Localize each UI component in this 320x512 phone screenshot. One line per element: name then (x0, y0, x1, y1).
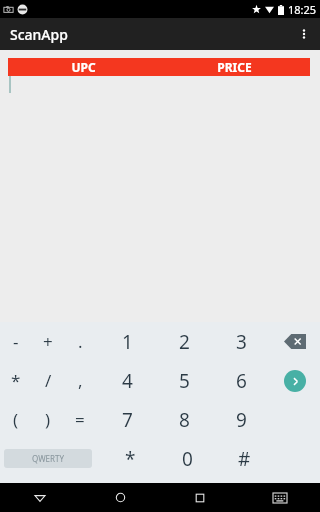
staticText: 2 (179, 329, 190, 355)
button[interactable]: More options (288, 18, 320, 50)
staticText: 18:25 (288, 2, 317, 17)
button[interactable]: Enter (284, 370, 306, 392)
button[interactable]: , (64, 361, 96, 400)
button[interactable]: QWERTY (4, 449, 92, 468)
staticText: 7 (122, 407, 133, 433)
button[interactable]: = (64, 400, 96, 439)
button[interactable]: # (216, 439, 273, 478)
staticText: - (13, 330, 19, 353)
button[interactable]: 7 (99, 400, 156, 439)
button[interactable]: * (102, 439, 159, 478)
staticText: 6 (236, 368, 247, 394)
button[interactable]: Home (80, 483, 160, 512)
button[interactable]: ( (0, 400, 32, 439)
button[interactable]: 8 (156, 400, 213, 439)
button[interactable]: 1 (99, 322, 156, 361)
staticText: ( (13, 408, 19, 431)
staticText: 5 (179, 368, 190, 394)
button[interactable]: 4 (99, 361, 156, 400)
staticText: ScanApp (10, 25, 68, 44)
button[interactable]: Keyboard (240, 483, 320, 512)
button[interactable]: * (0, 361, 32, 400)
button[interactable]: - (0, 322, 32, 361)
staticText: 9 (236, 407, 247, 433)
staticText: 3 (236, 329, 247, 355)
button[interactable]: / (32, 361, 64, 400)
staticText: / (45, 369, 52, 392)
staticText: * (11, 369, 21, 392)
staticText: 8 (179, 407, 190, 433)
button[interactable]: . (64, 322, 96, 361)
staticText: 0 (182, 446, 193, 472)
button[interactable]: 5 (156, 361, 213, 400)
staticText: + (43, 330, 53, 353)
staticText: UPC (71, 59, 96, 75)
staticText: ) (45, 408, 51, 431)
staticText: QWERTY (32, 453, 65, 464)
staticText: . (78, 330, 83, 353)
button[interactable]: 9 (213, 400, 270, 439)
button[interactable]: Backspace (284, 334, 306, 349)
button[interactable]: ) (32, 400, 64, 439)
button[interactable]: 6 (213, 361, 270, 400)
staticText: , (78, 369, 83, 392)
button[interactable]: Back (0, 483, 80, 512)
button[interactable]: Recent apps (160, 483, 240, 512)
staticText: 1 (122, 329, 133, 355)
staticText: = (75, 408, 85, 431)
staticText: 4 (122, 368, 133, 394)
button[interactable]: 2 (156, 322, 213, 361)
button[interactable]: 0 (159, 439, 216, 478)
button[interactable]: 3 (213, 322, 270, 361)
staticText: # (238, 446, 251, 472)
button[interactable]: UPC (8, 58, 310, 76)
button[interactable]: + (32, 322, 64, 361)
staticText: * (125, 446, 136, 472)
staticText: PRICE (217, 59, 252, 75)
